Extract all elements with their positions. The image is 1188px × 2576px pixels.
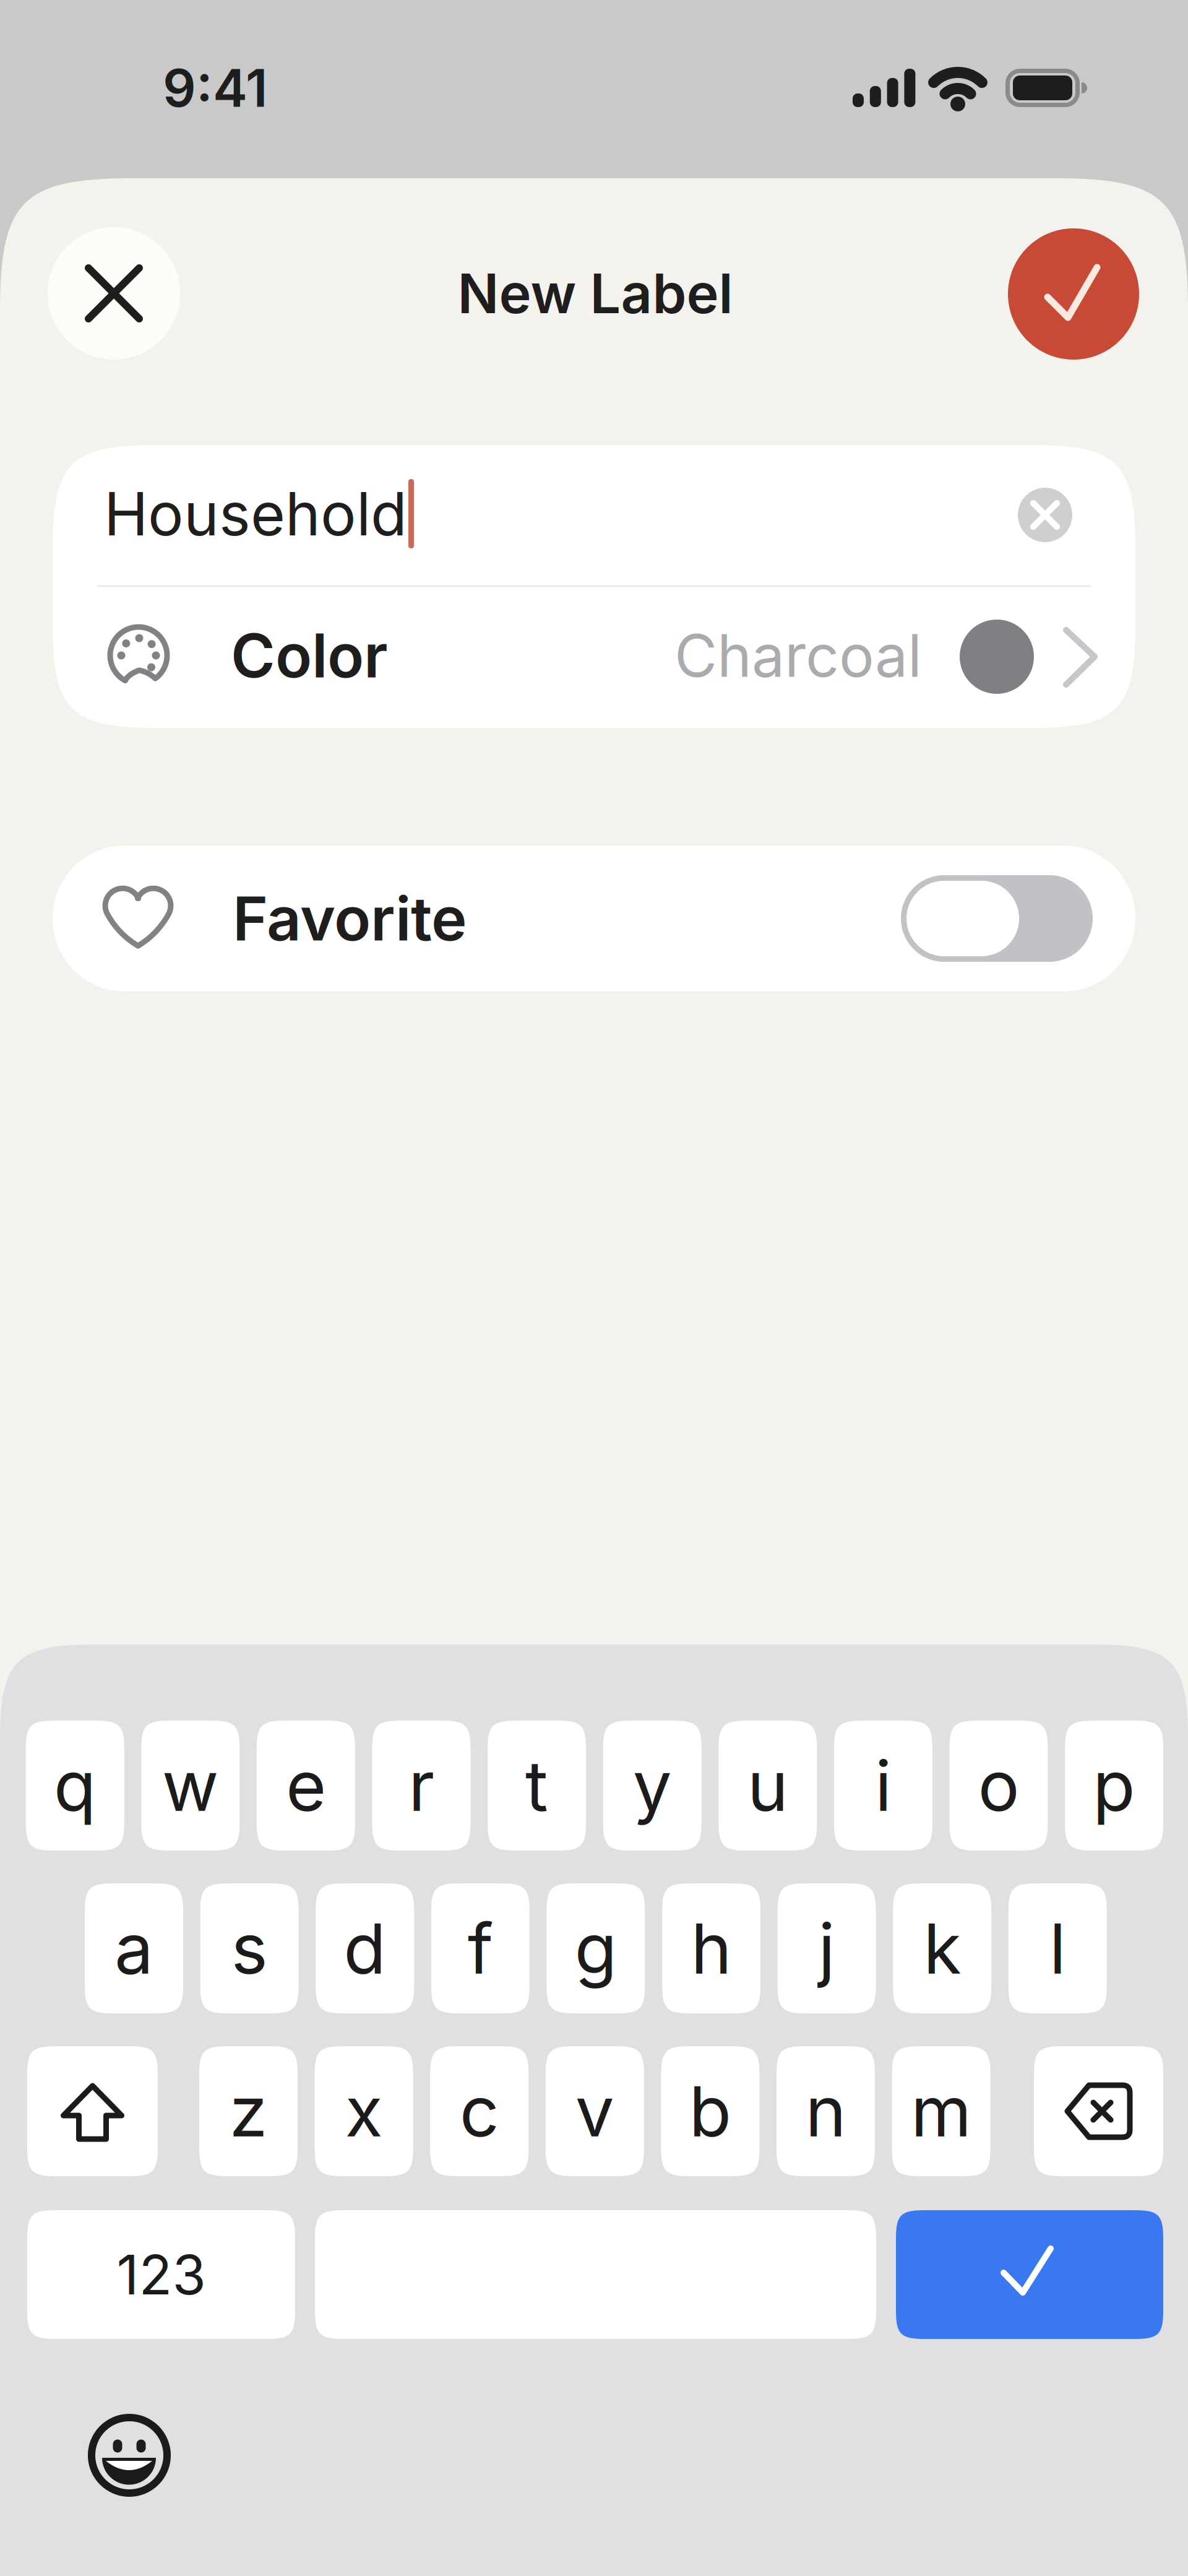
staticText: c: [460, 2069, 499, 2153]
button[interactable]: e: [257, 1721, 355, 1851]
staticText: e: [286, 1744, 326, 1828]
button[interactable]: z: [199, 2046, 298, 2176]
staticText: Color: [231, 619, 388, 692]
button[interactable]: h: [662, 1883, 760, 2013]
staticText: Favorite: [233, 882, 467, 955]
staticText: n: [805, 2069, 846, 2153]
button[interactable]: b: [661, 2046, 759, 2176]
button[interactable]: u: [719, 1721, 817, 1851]
button[interactable]: d: [316, 1883, 414, 2013]
button[interactable]: q: [26, 1721, 124, 1851]
staticText: u: [747, 1744, 788, 1828]
button[interactable]: Shift: [27, 2046, 158, 2176]
staticText: d: [344, 1906, 386, 1990]
button[interactable]: v: [546, 2046, 644, 2176]
button[interactable]: Delete: [1034, 2046, 1163, 2176]
staticText: l: [1049, 1906, 1066, 1990]
button[interactable]: r: [372, 1721, 471, 1851]
button[interactable]: g: [547, 1883, 645, 2013]
button[interactable]: x: [315, 2046, 413, 2176]
button[interactable]: Emoji: [88, 2414, 171, 2497]
staticText: Charcoal: [674, 620, 922, 691]
staticText: 9:41: [163, 56, 268, 119]
button[interactable]: Close: [48, 227, 180, 360]
staticText: s: [231, 1906, 268, 1990]
staticText: h: [691, 1906, 732, 1990]
button[interactable]: Favorite: [53, 845, 1135, 992]
button[interactable]: y: [603, 1721, 701, 1851]
button[interactable]: 123: [27, 2210, 295, 2339]
staticText: w: [162, 1744, 219, 1828]
staticText: i: [875, 1744, 892, 1828]
button[interactable]: Clear text: [1018, 488, 1072, 542]
button[interactable]: c: [430, 2046, 529, 2176]
button[interactable]: n: [777, 2046, 875, 2176]
button[interactable]: o: [949, 1721, 1048, 1851]
staticText: f: [468, 1906, 493, 1990]
button[interactable]: s: [200, 1883, 299, 2013]
button[interactable]: w: [141, 1721, 240, 1851]
staticText: g: [574, 1906, 617, 1990]
button[interactable]: Return: [896, 2210, 1163, 2339]
button[interactable]: j: [778, 1883, 876, 2013]
staticText: Household: [104, 478, 407, 550]
staticText: x: [345, 2069, 383, 2153]
staticText: a: [114, 1906, 153, 1990]
button[interactable]: a: [85, 1883, 183, 2013]
button[interactable]: Save: [1008, 228, 1139, 360]
staticText: New Label: [458, 260, 733, 326]
staticText: p: [1093, 1744, 1135, 1828]
button[interactable]: l: [1008, 1883, 1107, 2013]
staticText: q: [54, 1744, 96, 1828]
staticText: 123: [117, 2242, 206, 2308]
staticText: r: [408, 1744, 434, 1828]
button[interactable]: t: [488, 1721, 586, 1851]
button[interactable]: f: [431, 1883, 530, 2013]
staticText: y: [633, 1744, 672, 1828]
staticText: k: [923, 1906, 961, 1990]
staticText: j: [818, 1906, 835, 1990]
button[interactable]: Color: [53, 586, 1135, 728]
staticText: z: [229, 2069, 268, 2153]
button[interactable]: k: [893, 1883, 991, 2013]
staticText: v: [575, 2069, 614, 2153]
staticText: o: [978, 1744, 1019, 1828]
button[interactable]: m: [892, 2046, 990, 2176]
staticText: m: [911, 2069, 971, 2153]
button[interactable]: p: [1065, 1721, 1163, 1851]
button[interactable]: i: [834, 1721, 932, 1851]
staticText: b: [689, 2069, 732, 2153]
staticText: t: [525, 1744, 548, 1828]
